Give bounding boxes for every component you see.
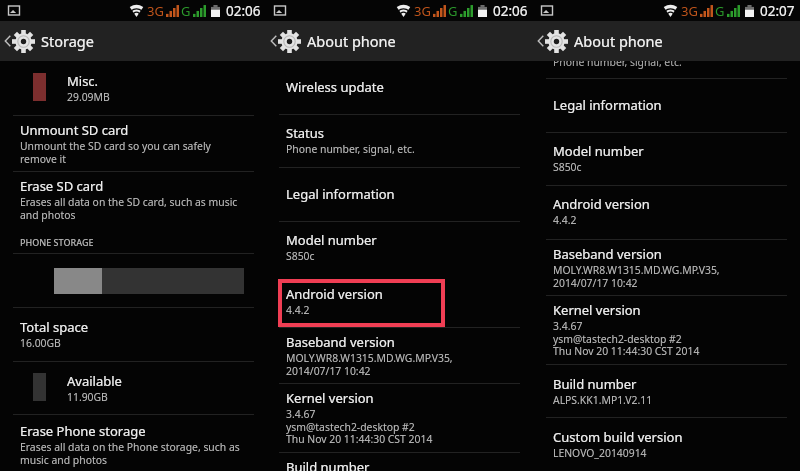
staticText: 02:06	[493, 2, 528, 20]
button[interactable]: Kernel version	[286, 389, 527, 446]
other: Back	[270, 34, 277, 48]
staticText: Build number	[553, 375, 637, 393]
button[interactable]: Status	[286, 124, 527, 156]
other: Screenshot	[8, 5, 20, 16]
button[interactable]: Legal information	[286, 185, 527, 203]
staticText: Legal information	[286, 185, 395, 203]
staticText: G	[448, 2, 458, 20]
staticText: PHONE STORAGE	[20, 236, 94, 248]
button[interactable]: Baseband version	[553, 245, 794, 290]
staticText: Unmount SD card	[20, 121, 129, 139]
staticText: 29.09MB	[67, 90, 110, 104]
other: Back	[537, 34, 544, 48]
staticText: Phone number, signal, etc.	[553, 55, 682, 69]
button[interactable]: Build number	[553, 375, 794, 407]
button[interactable]: Back	[266, 21, 533, 61]
staticText: Baseband version	[553, 245, 662, 263]
staticText: Android version	[553, 195, 650, 213]
staticText: Wireless update	[286, 78, 384, 96]
button[interactable]: Android version	[286, 285, 527, 317]
staticText: Android version	[286, 285, 383, 303]
staticText: ALPS.KK1.MP1.V2.11	[553, 393, 653, 407]
staticText: Legal information	[553, 96, 662, 114]
staticText: About phone	[574, 31, 663, 51]
button[interactable]: Unmount SD card	[20, 121, 261, 166]
other: Screenshot	[274, 5, 286, 16]
staticText: Storage	[41, 31, 94, 51]
staticText: Kernel version	[286, 389, 374, 407]
staticText: Available	[67, 372, 122, 390]
staticText: 3G	[147, 2, 164, 20]
staticText: Model number	[553, 142, 644, 160]
staticText: Erases all data on the SD card, such as …	[20, 195, 238, 222]
staticText: 4.4.2	[553, 213, 577, 227]
button[interactable]: Back	[533, 21, 800, 61]
button[interactable]: Legal information	[553, 96, 794, 114]
staticText: Status	[286, 124, 325, 142]
button[interactable]: Total space	[20, 318, 261, 350]
button[interactable]: Back	[0, 21, 266, 61]
button[interactable]: Erase Phone storage	[20, 422, 261, 467]
staticText: Erases all data on the Phone storage, su…	[20, 440, 240, 467]
staticText: About phone	[307, 31, 396, 51]
staticText: MOLY.WR8.W1315.MD.WG.MP.V35, 2014/07/17 …	[553, 263, 720, 290]
button[interactable]: Available	[33, 372, 261, 404]
staticText: Custom build version	[553, 428, 683, 446]
button[interactable]: Wireless update	[286, 78, 527, 96]
staticText: MOLY.WR8.W1315.MD.WG.MP.V35, 2014/07/17 …	[286, 351, 453, 378]
button[interactable]: Build number	[286, 458, 527, 471]
button[interactable]: Android version	[553, 195, 794, 227]
button[interactable]: Misc.	[33, 72, 261, 104]
staticText: S850c	[553, 160, 582, 174]
staticText: S850c	[286, 249, 315, 263]
other: Screenshot	[541, 5, 553, 16]
staticText: 02:06	[226, 2, 261, 20]
staticText: 3G	[681, 2, 698, 20]
staticText: Unmount the SD card so you can safely re…	[20, 139, 211, 166]
staticText: Misc.	[67, 72, 99, 90]
staticText: LENOVO_20140914	[553, 446, 647, 460]
staticText: 3.4.67 ysm@tastech2-desktop #2 Thu Nov 2…	[286, 407, 433, 446]
staticText: Baseband version	[286, 333, 395, 351]
button[interactable]: Baseband version	[286, 333, 527, 378]
staticText: Model number	[286, 231, 377, 249]
staticText: Kernel version	[553, 301, 641, 319]
button[interactable]: Custom build version	[553, 428, 794, 460]
staticText: G	[715, 2, 725, 20]
staticText: Phone number, signal, etc.	[286, 142, 415, 156]
staticText: 02:07	[760, 2, 795, 20]
staticText: Total space	[20, 318, 88, 336]
staticText: Erase SD card	[20, 177, 104, 195]
other: Back	[4, 34, 11, 48]
staticText: 3.4.67 ysm@tastech2-desktop #2 Thu Nov 2…	[553, 319, 700, 358]
staticText: 3G	[414, 2, 431, 20]
button[interactable]: Kernel version	[553, 301, 794, 358]
button[interactable]: Model number	[553, 142, 794, 174]
staticText: 4.4.2	[286, 303, 310, 317]
staticText: 11.90GB	[67, 390, 108, 404]
staticText: 16.00GB	[20, 336, 61, 350]
staticText: Build number	[286, 458, 370, 471]
button[interactable]: Model number	[286, 231, 527, 263]
staticText: Erase Phone storage	[20, 422, 146, 440]
button[interactable]: Erase SD card	[20, 177, 261, 222]
staticText: G	[181, 2, 191, 20]
